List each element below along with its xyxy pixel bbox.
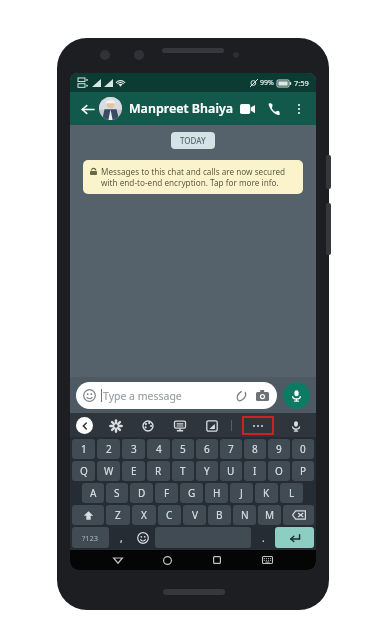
button[interactable]: Attach bbox=[234, 388, 249, 403]
button[interactable]: C bbox=[158, 505, 181, 525]
button[interactable]: Numbers and symbols bbox=[72, 527, 109, 548]
staticText: , bbox=[120, 531, 123, 545]
staticText: 8 bbox=[252, 442, 258, 456]
button[interactable]: Camera bbox=[255, 388, 270, 403]
button[interactable]: Shift bbox=[72, 505, 104, 525]
button[interactable]: Collapse toolbar bbox=[76, 417, 93, 434]
staticText: L bbox=[289, 486, 295, 500]
staticText: G bbox=[188, 486, 196, 500]
staticText: M bbox=[265, 508, 275, 522]
button[interactable]: 6 bbox=[196, 439, 218, 459]
button[interactable]: Emoji bbox=[133, 527, 153, 548]
button[interactable]: W bbox=[97, 461, 120, 481]
button[interactable]: S bbox=[106, 483, 128, 503]
button[interactable]: 0 bbox=[292, 439, 314, 459]
button[interactable]: T bbox=[172, 461, 194, 481]
staticText: 6 bbox=[204, 442, 210, 456]
staticText: Z bbox=[115, 508, 121, 522]
button[interactable]: K bbox=[255, 483, 278, 503]
button[interactable]: Recent apps bbox=[207, 550, 227, 570]
staticText: 99% bbox=[260, 78, 274, 88]
staticText: Q bbox=[80, 464, 88, 478]
button[interactable]: F bbox=[155, 483, 178, 503]
button[interactable]: Profile photo bbox=[99, 97, 122, 120]
staticText: 1 bbox=[81, 442, 87, 456]
staticText: X bbox=[141, 508, 147, 522]
button[interactable]: 2 bbox=[97, 439, 120, 459]
button[interactable]: Manpreet Bhaiya bbox=[129, 100, 236, 117]
button[interactable]: TODAY bbox=[171, 132, 215, 149]
button[interactable]: J bbox=[230, 483, 253, 503]
button[interactable]: I bbox=[244, 461, 266, 481]
staticText: E bbox=[131, 464, 137, 478]
button[interactable]: G bbox=[180, 483, 203, 503]
button[interactable]: P bbox=[292, 461, 314, 481]
button[interactable]: V bbox=[183, 505, 206, 525]
staticText: W bbox=[104, 464, 114, 478]
button[interactable]: X bbox=[132, 505, 156, 525]
button[interactable]: 1 bbox=[72, 439, 95, 459]
staticText: 7:59 bbox=[294, 78, 309, 88]
staticText: 7 bbox=[228, 442, 234, 456]
staticText: T bbox=[180, 464, 186, 478]
button[interactable]: A bbox=[82, 483, 104, 503]
staticText: 2 bbox=[106, 442, 112, 456]
button[interactable]: Backspace bbox=[283, 505, 314, 525]
button[interactable]: 5 bbox=[172, 439, 194, 459]
button[interactable]: R bbox=[147, 461, 170, 481]
button[interactable]: Switch keyboard bbox=[257, 550, 277, 570]
button[interactable]: U bbox=[220, 461, 242, 481]
button[interactable]: Z bbox=[106, 505, 130, 525]
button[interactable]: Video call bbox=[236, 98, 258, 120]
staticText: Type a message bbox=[103, 389, 234, 403]
staticText: N bbox=[241, 508, 249, 522]
button[interactable]: Enter bbox=[275, 527, 314, 548]
button[interactable]: H bbox=[205, 483, 228, 503]
button[interactable]: Type a message bbox=[76, 382, 277, 409]
button[interactable]: B bbox=[208, 505, 231, 525]
button[interactable]: Comma bbox=[111, 527, 131, 548]
button[interactable]: Back bbox=[77, 99, 97, 119]
staticText: C bbox=[166, 508, 173, 522]
staticText: P bbox=[300, 464, 307, 478]
button[interactable]: Settings bbox=[107, 417, 124, 434]
button[interactable]: L bbox=[280, 483, 303, 503]
staticText: B bbox=[216, 508, 223, 522]
button[interactable]: D bbox=[130, 483, 153, 503]
staticText: Y bbox=[204, 464, 210, 478]
staticText: 4 bbox=[156, 442, 162, 456]
button[interactable]: Floating keyboard bbox=[203, 417, 220, 434]
staticText: 9 bbox=[276, 442, 282, 456]
button[interactable]: N bbox=[233, 505, 256, 525]
staticText: TODAY bbox=[180, 135, 206, 146]
button[interactable]: 9 bbox=[268, 439, 290, 459]
button[interactable]: Theme bbox=[139, 417, 156, 434]
staticText: J bbox=[240, 486, 243, 500]
button[interactable]: Back bbox=[108, 550, 128, 570]
button[interactable]: Home bbox=[157, 550, 177, 570]
staticText: A bbox=[90, 486, 97, 500]
button[interactable]: Messages to this chat and calls are now … bbox=[83, 160, 303, 194]
staticText: I bbox=[253, 464, 257, 478]
button[interactable]: 3 bbox=[122, 439, 145, 459]
staticText: ?123 bbox=[82, 533, 99, 543]
button[interactable]: E bbox=[122, 461, 145, 481]
button[interactable]: Voice call bbox=[263, 98, 285, 120]
button[interactable]: M bbox=[258, 505, 281, 525]
button[interactable]: Voice message bbox=[283, 382, 310, 409]
button[interactable]: Voice input bbox=[287, 417, 304, 434]
staticText: K bbox=[263, 486, 270, 500]
button[interactable]: 7 bbox=[220, 439, 242, 459]
button[interactable]: Resize keyboard bbox=[171, 417, 188, 434]
staticText: H bbox=[213, 486, 221, 500]
button[interactable]: More options bbox=[289, 99, 309, 119]
button[interactable]: 4 bbox=[147, 439, 170, 459]
button[interactable]: Period bbox=[253, 527, 273, 548]
button[interactable]: O bbox=[268, 461, 290, 481]
button[interactable]: 8 bbox=[244, 439, 266, 459]
button[interactable]: Q bbox=[72, 461, 95, 481]
button[interactable]: More keyboard options bbox=[243, 417, 273, 434]
staticText: D bbox=[138, 486, 146, 500]
button[interactable]: Y bbox=[196, 461, 218, 481]
